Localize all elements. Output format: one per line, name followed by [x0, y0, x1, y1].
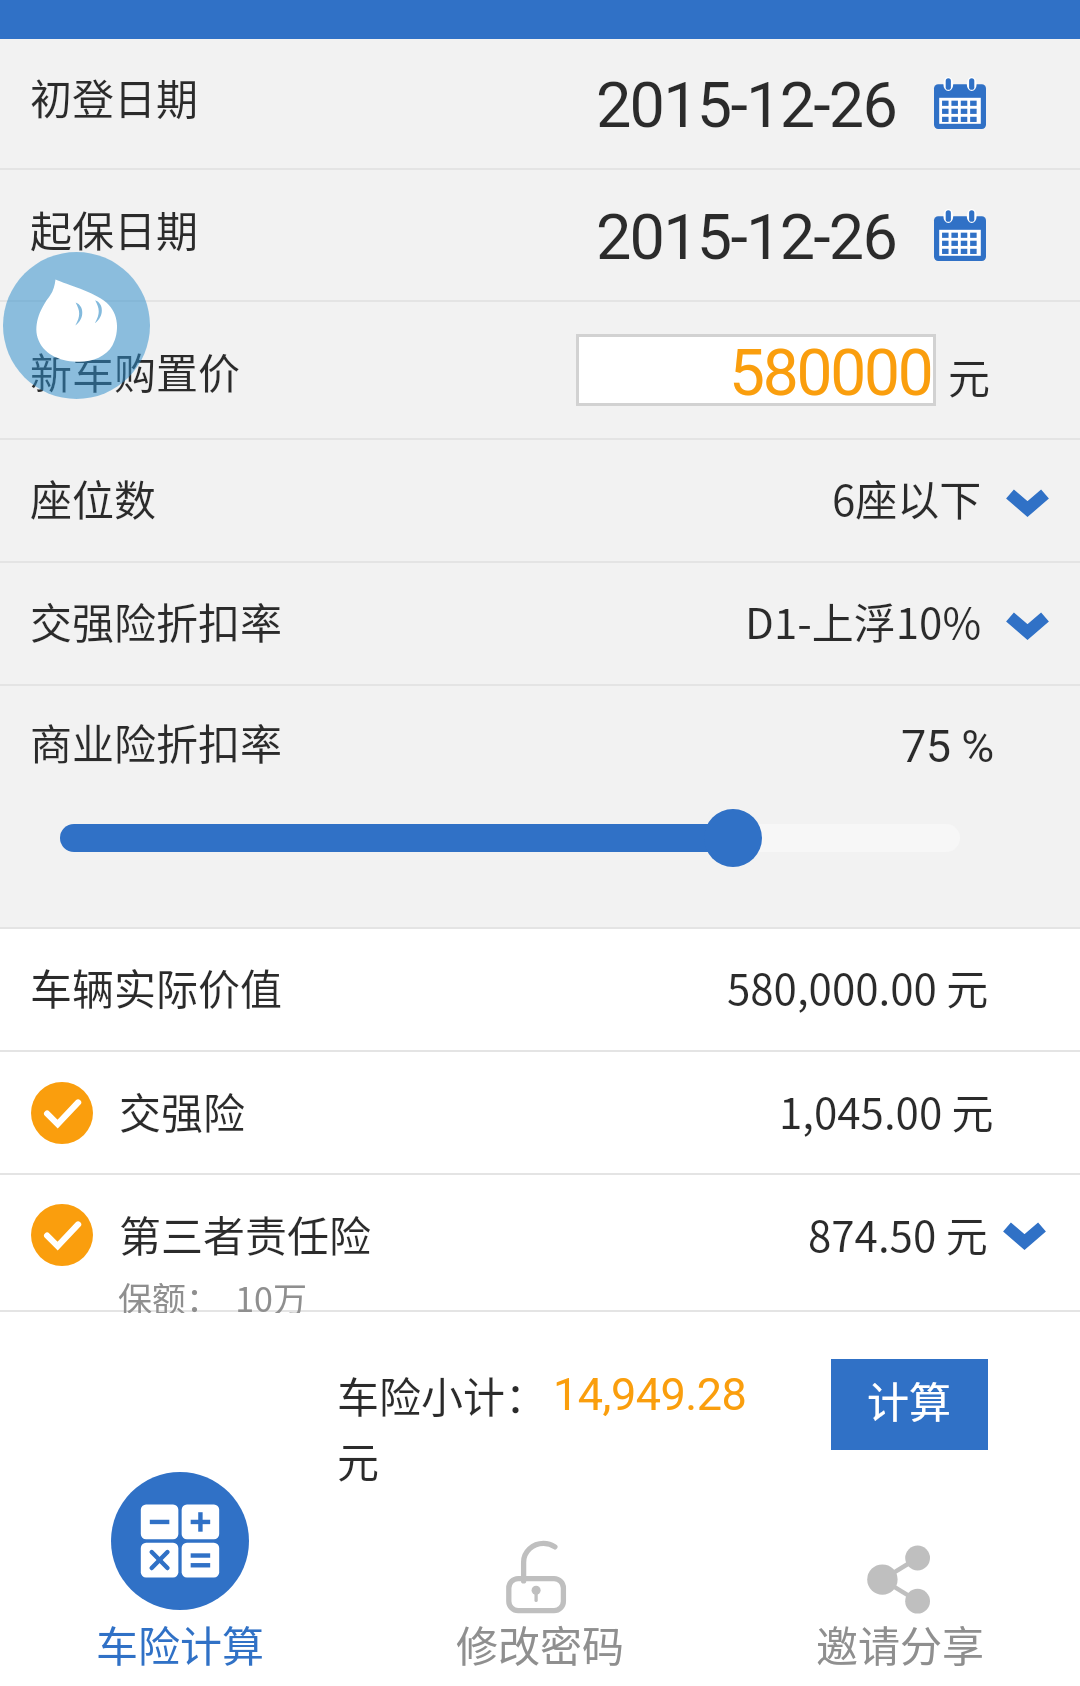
staticText: 商业险折扣率 — [30, 711, 283, 772]
staticText: 交强险 — [119, 1080, 246, 1141]
button[interactable]: 起保日期 — [0, 170, 1080, 302]
staticText: 2015-12-26 — [596, 69, 897, 143]
staticText: 初登日期 — [30, 66, 199, 127]
staticText: 车辆实际价值 — [30, 956, 283, 1017]
button[interactable]: 计算 — [831, 1359, 988, 1450]
staticText: 75 % — [901, 720, 994, 773]
staticText: 起保日期 — [30, 198, 199, 259]
staticText: 新车购置价 — [30, 340, 241, 401]
staticText: 交强险折扣率 — [30, 590, 283, 651]
button[interactable]: 新车购置价 — [0, 302, 1080, 438]
button[interactable]: 第三者责任险 — [0, 1175, 1080, 1310]
staticText: 邀请分享 — [816, 1613, 985, 1674]
staticText: 14,949.28 — [553, 1368, 747, 1421]
staticText: 座位数 — [30, 467, 157, 528]
staticText: 计算 — [867, 1369, 952, 1430]
button[interactable]: 初登日期 — [0, 38, 1080, 170]
button[interactable]: 商业险折扣率 — [0, 686, 1080, 927]
staticText: 第三者责任险 — [119, 1203, 372, 1264]
staticText: 874.50 元 — [808, 1203, 988, 1264]
staticText: 元 — [948, 345, 991, 406]
button[interactable]: 邀请分享 — [720, 1522, 1080, 1686]
staticText: 车险小计： — [337, 1364, 548, 1425]
staticText: 6座以下 — [832, 467, 982, 528]
button[interactable]: 车辆实际价值 — [0, 929, 1080, 1050]
staticText: 580000 — [729, 336, 932, 408]
staticText: 保额： 10万 — [118, 1273, 307, 1322]
button[interactable]: Assistant — [3, 252, 150, 399]
staticText: 580,000.00 元 — [727, 956, 989, 1017]
staticText: 车险计算 — [96, 1613, 265, 1674]
button[interactable]: 座位数 — [0, 440, 1080, 563]
button[interactable]: 交强险折扣率 — [0, 563, 1080, 686]
staticText: 1,045.00 元 — [779, 1080, 994, 1141]
button[interactable]: 车险计算 — [0, 1522, 360, 1686]
staticText: 元 — [337, 1429, 380, 1490]
button[interactable]: 修改密码 — [360, 1522, 720, 1686]
button[interactable]: 交强险 — [0, 1052, 1080, 1173]
staticText: 修改密码 — [456, 1613, 625, 1674]
staticText: 2015-12-26 — [596, 201, 897, 275]
staticText: D1-上浮10% — [745, 590, 982, 651]
